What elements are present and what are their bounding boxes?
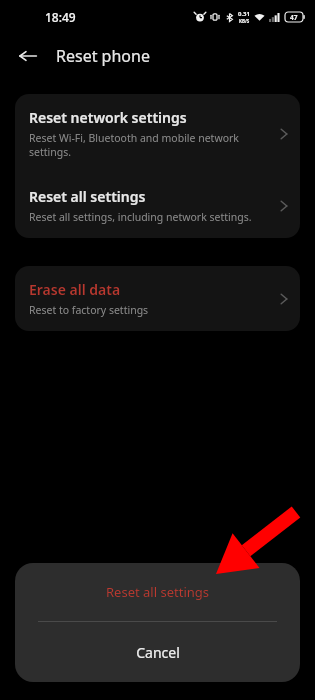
button[interactable]: Cancel [15,622,300,682]
staticText: 0.31 [238,10,250,18]
staticText: Erase all data [29,280,121,299]
staticText: Reset all settings [106,583,209,601]
staticText: KB/S [239,18,250,24]
button[interactable]: Reset network settings [15,94,300,173]
staticText: 18:49 [45,9,76,25]
button[interactable]: Reset all settings [15,173,300,238]
staticText: Reset all settings [29,187,146,206]
button[interactable]: Back [10,38,46,74]
button[interactable]: Erase all data [15,266,300,331]
staticText: Cancel [136,643,180,662]
staticText: 47 [290,13,298,22]
staticText: Reset to factory settings [29,303,149,317]
staticText: Reset Wi-Fi, Bluetooth and mobile networ… [29,131,274,159]
staticText: Reset network settings [29,108,187,127]
button[interactable]: Reset all settings [15,563,300,621]
staticText: Reset phone [56,45,150,67]
staticText: Reset all settings, including network se… [29,210,252,224]
